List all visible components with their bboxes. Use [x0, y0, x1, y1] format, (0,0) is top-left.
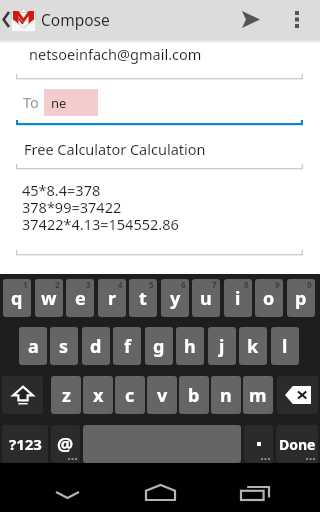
staticText: i	[235, 286, 241, 311]
button[interactable]: g	[145, 327, 173, 365]
button[interactable]: More options	[282, 0, 320, 39]
button[interactable]: o	[255, 279, 283, 317]
button[interactable]: Recent apps	[228, 463, 282, 512]
staticText: h	[184, 334, 196, 359]
staticText: 2	[55, 279, 60, 290]
staticText: f	[124, 334, 131, 359]
staticText: 45*8.4=378	[22, 180, 101, 200]
button[interactable]: l	[271, 327, 299, 365]
button[interactable]: z	[51, 376, 81, 414]
button[interactable]: Navigate up	[0, 0, 38, 39]
button[interactable]: f	[113, 327, 141, 365]
button[interactable]: Home	[133, 463, 187, 512]
staticText: 378*99=37422	[22, 197, 122, 217]
staticText: z	[62, 383, 71, 408]
staticText: w	[41, 286, 57, 311]
button[interactable]: To	[16, 83, 304, 121]
button[interactable]: r	[98, 279, 126, 317]
staticText: y	[170, 286, 181, 311]
staticText: Free Calculator Calculation	[24, 139, 206, 159]
button[interactable]: j	[208, 327, 236, 365]
button[interactable]: q	[3, 279, 31, 317]
staticText: j	[219, 334, 225, 359]
staticText: netsoeinfach@gmail.com	[29, 44, 202, 64]
staticText: e	[75, 286, 86, 311]
button[interactable]: n	[211, 376, 241, 414]
button[interactable]: x	[83, 376, 113, 414]
button[interactable]: t	[129, 279, 157, 317]
staticText: 5	[149, 279, 154, 290]
staticText: a	[28, 334, 39, 359]
staticText: ne	[51, 94, 67, 112]
button[interactable]: u	[192, 279, 220, 317]
button[interactable]: Shift	[2, 376, 43, 414]
button[interactable]: m	[243, 376, 273, 414]
button[interactable]: 45*8.4=378	[16, 175, 304, 253]
button[interactable]: c	[115, 376, 145, 414]
button[interactable]: netsoeinfach@gmail.com	[16, 39, 304, 74]
staticText: @	[57, 432, 74, 457]
staticText: m	[249, 383, 267, 408]
button[interactable]: Hide keyboard	[40, 463, 94, 512]
staticText: c	[125, 383, 135, 408]
button[interactable]: Send	[222, 0, 278, 39]
staticText: g	[153, 334, 165, 359]
staticText: n	[220, 383, 232, 408]
button[interactable]: i	[224, 279, 252, 317]
staticText: 6	[181, 279, 186, 290]
staticText: l	[282, 334, 288, 359]
staticText: o	[263, 286, 275, 311]
staticText: Compose	[41, 9, 110, 30]
staticText: 1	[23, 279, 28, 290]
staticText: To	[23, 92, 39, 112]
staticText: r	[108, 286, 117, 311]
staticText: u	[200, 286, 212, 311]
staticText: x	[93, 383, 104, 408]
button[interactable]	[244, 425, 273, 463]
staticText: 37422*4.13=154552.86	[22, 214, 179, 234]
button[interactable]: v	[147, 376, 177, 414]
staticText: k	[247, 334, 259, 359]
button[interactable]: e	[66, 279, 94, 317]
staticText: b	[188, 383, 200, 408]
staticText: 3	[86, 279, 91, 290]
staticText: 9	[275, 279, 280, 290]
staticText: 8	[244, 279, 249, 290]
staticText: Done	[279, 435, 316, 454]
button[interactable]: Free Calculator Calculation	[16, 131, 304, 165]
staticText: s	[59, 334, 69, 359]
staticText: 4	[118, 279, 123, 290]
button[interactable]: Backspace	[277, 376, 318, 414]
button[interactable]: p	[287, 279, 315, 317]
button[interactable]: d	[82, 327, 110, 365]
button[interactable]: a	[19, 327, 47, 365]
button[interactable]: ?123	[2, 425, 48, 463]
button[interactable]: w	[35, 279, 63, 317]
staticText: 7	[212, 279, 217, 290]
button[interactable]: k	[239, 327, 267, 365]
button[interactable]: Done	[276, 425, 318, 463]
staticText: t	[139, 286, 147, 311]
staticText: d	[90, 334, 102, 359]
button[interactable]: y	[161, 279, 189, 317]
button[interactable]: @	[51, 425, 80, 463]
staticText: ?123	[9, 434, 42, 454]
staticText: 0	[307, 279, 312, 290]
button[interactable]: h	[176, 327, 204, 365]
staticText: q	[11, 286, 23, 311]
staticText: p	[295, 286, 307, 311]
staticText: v	[157, 383, 168, 408]
button[interactable]: b	[179, 376, 209, 414]
button[interactable]: s	[50, 327, 78, 365]
